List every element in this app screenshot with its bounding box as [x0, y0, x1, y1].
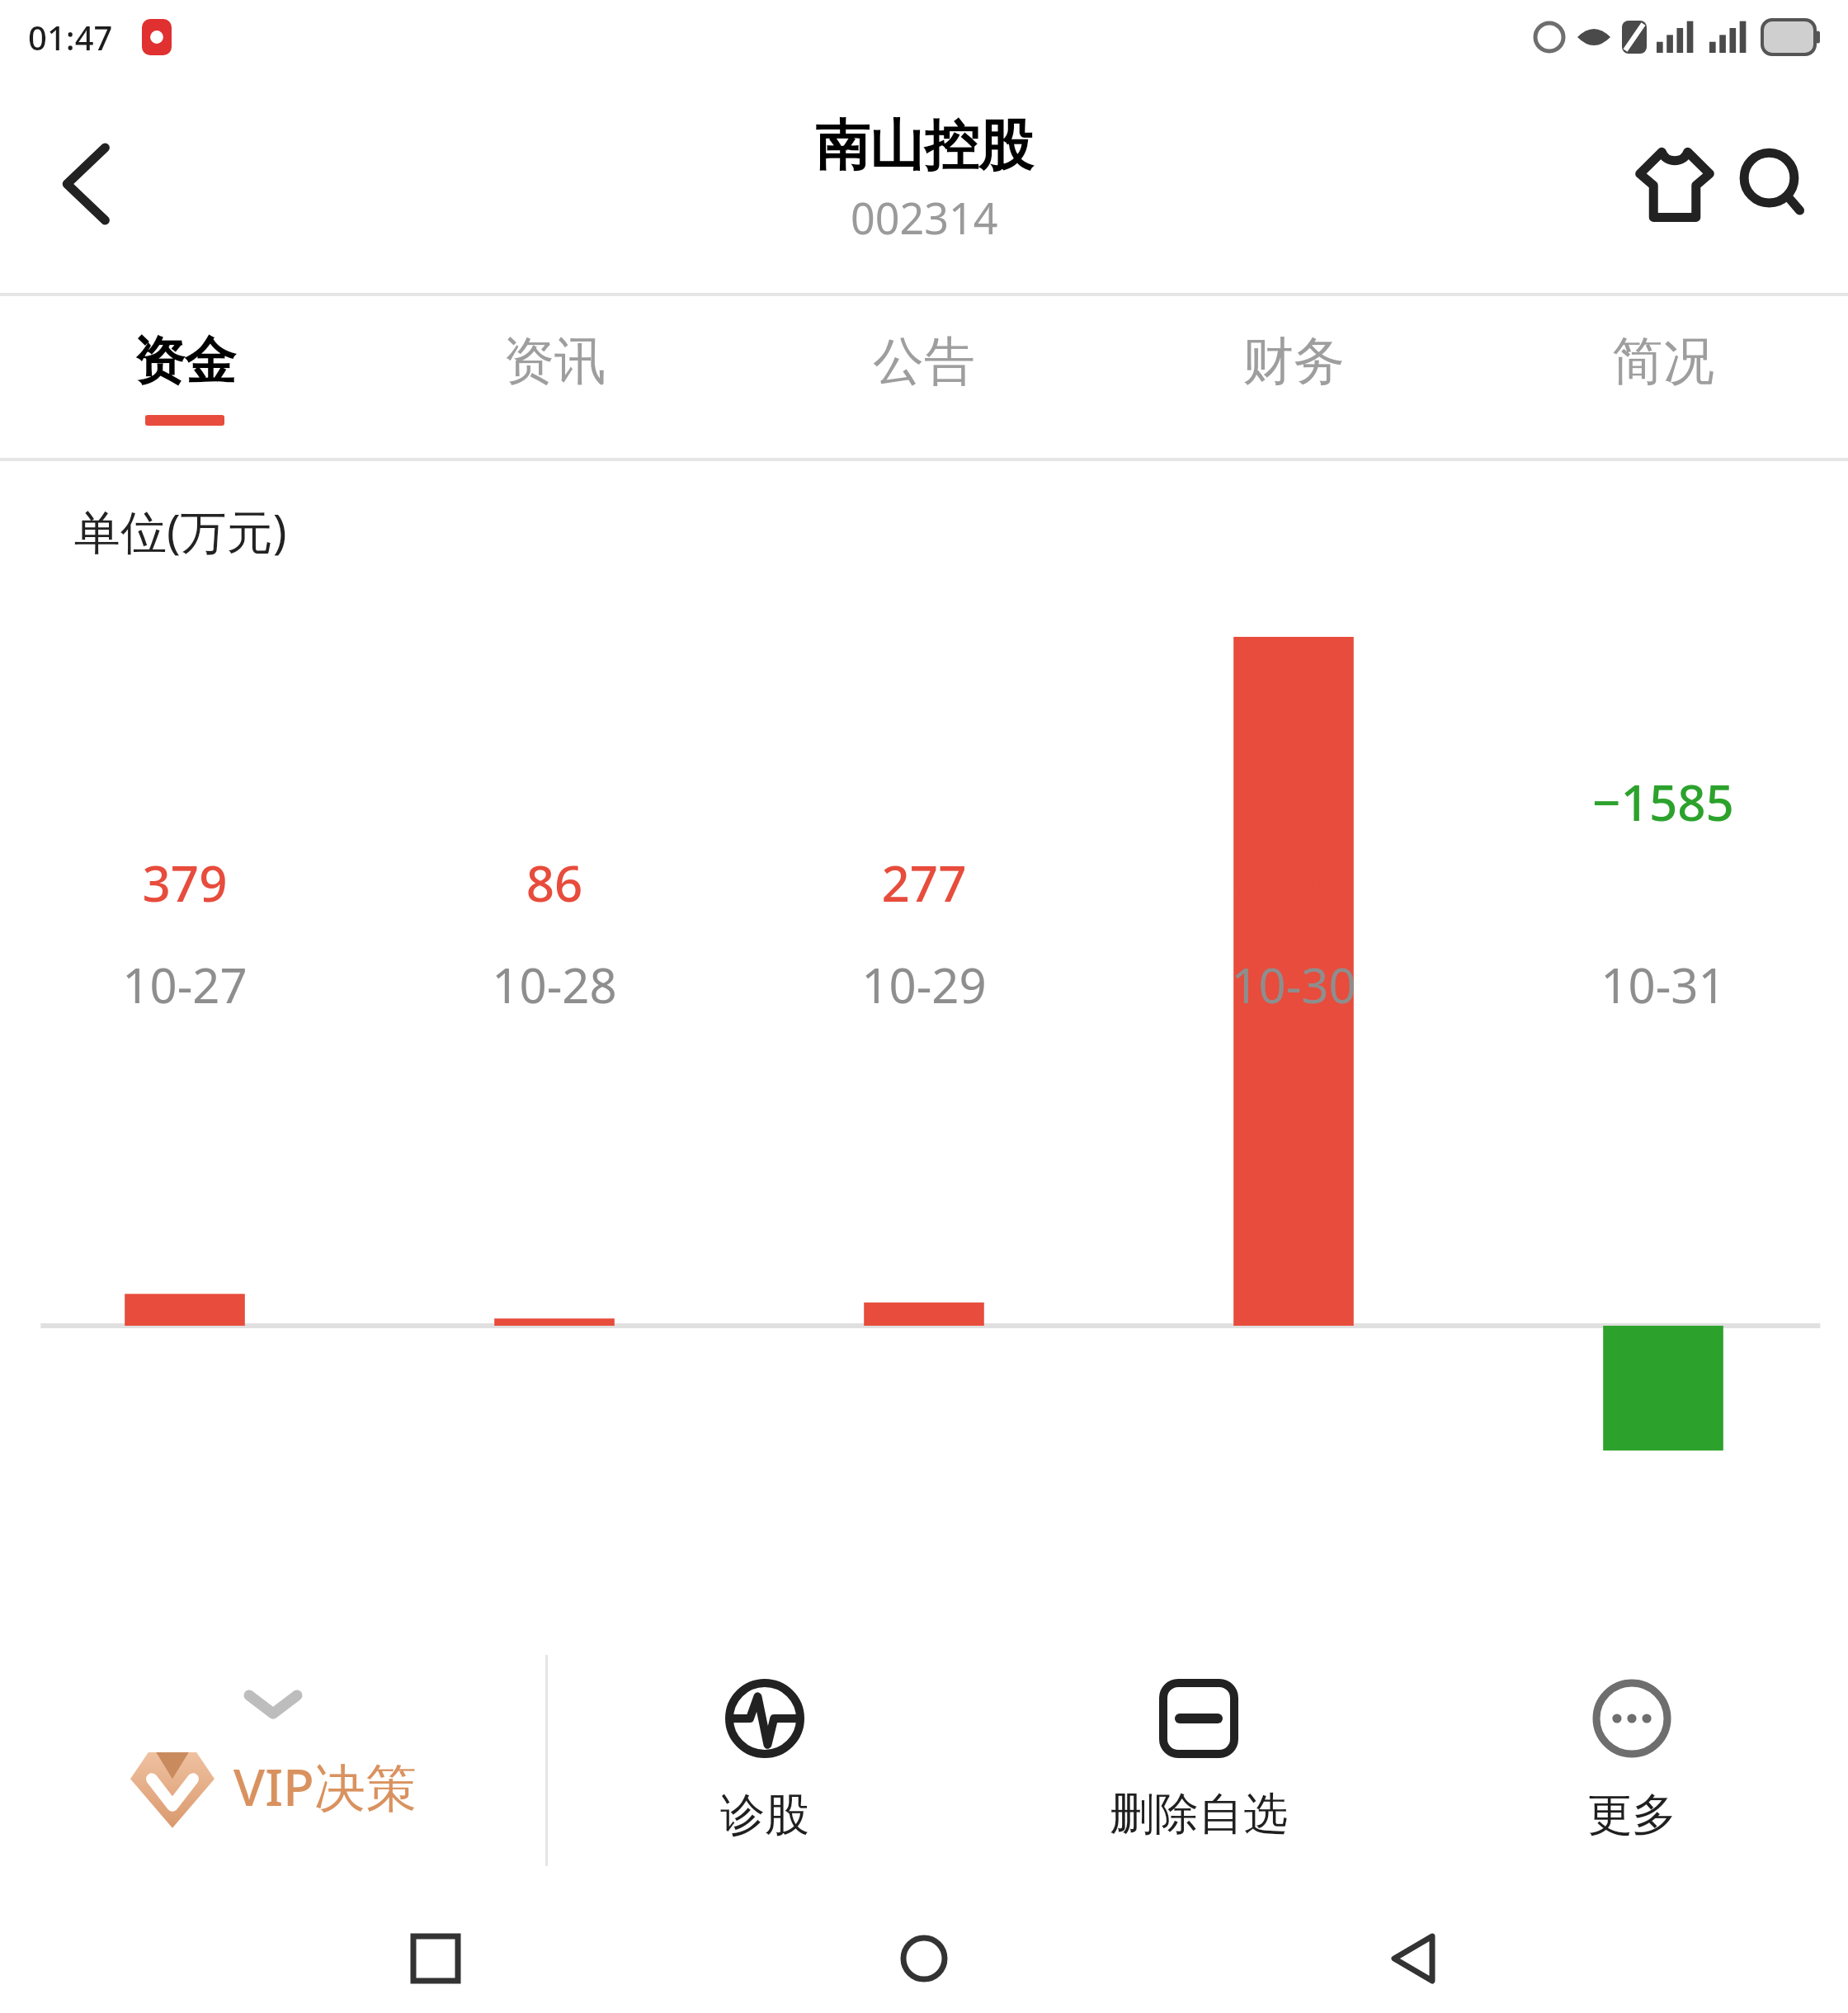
- staticText: 01:47: [28, 15, 113, 59]
- button[interactable]: 资金: [0, 296, 370, 458]
- staticText: 简况: [1612, 329, 1714, 394]
- button[interactable]: Back: [1360, 1905, 1467, 2012]
- staticText: 资金: [134, 329, 236, 394]
- staticText: 86: [370, 849, 739, 917]
- staticText: 资讯: [503, 329, 606, 394]
- button[interactable]: Search: [1724, 134, 1823, 233]
- staticText: 10-28: [370, 952, 739, 1017]
- staticText: 277: [739, 849, 1109, 917]
- staticText: 财务: [1242, 329, 1345, 394]
- button[interactable]: VIP决策: [0, 1617, 545, 1904]
- staticText: 公告: [873, 329, 975, 394]
- staticText: 更多: [1587, 1787, 1676, 1843]
- staticText: 10-29: [739, 952, 1109, 1017]
- staticText: 删除自选: [1110, 1786, 1288, 1842]
- staticText: VIP决策: [233, 1751, 417, 1822]
- button[interactable]: 财务: [1109, 296, 1478, 458]
- staticText: 南山控股: [815, 111, 1033, 180]
- button[interactable]: 更多: [1415, 1617, 1848, 1904]
- staticText: 单位(万元): [74, 499, 287, 562]
- staticText: 10-27: [0, 952, 370, 1017]
- button[interactable]: Recents: [382, 1905, 489, 2012]
- button[interactable]: 公告: [739, 296, 1109, 458]
- button[interactable]: 资讯: [370, 296, 739, 458]
- button[interactable]: 删除自选: [982, 1617, 1415, 1904]
- button[interactable]: 简况: [1478, 296, 1848, 458]
- button[interactable]: Back: [33, 130, 140, 238]
- button[interactable]: Theme: [1625, 134, 1724, 233]
- staticText: 诊股: [720, 1787, 809, 1843]
- button[interactable]: Home: [870, 1905, 978, 2012]
- staticText: 8198: [1109, 849, 1478, 917]
- staticText: 379: [0, 849, 370, 917]
- staticText: 002314: [851, 188, 998, 247]
- staticText: 10-31: [1478, 952, 1848, 1017]
- staticText: 10-30: [1109, 952, 1478, 1017]
- staticText: −1585: [1478, 768, 1848, 836]
- button[interactable]: 诊股: [548, 1617, 982, 1904]
